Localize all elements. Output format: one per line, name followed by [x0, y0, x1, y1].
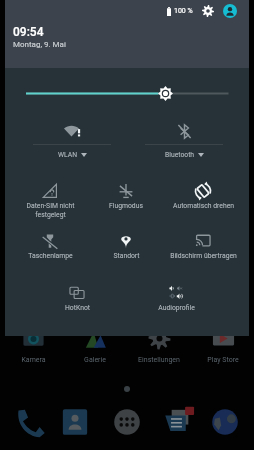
staticText: Automatisch drehen [173, 202, 234, 210]
staticText: Kamera [21, 356, 46, 364]
button[interactable]: Bildschirm übertragen [158, 233, 248, 269]
staticText: Montag, 9. Mai [13, 40, 66, 49]
staticText: Einstellungen [138, 356, 180, 364]
staticText: Galerie [84, 356, 106, 364]
button[interactable]: WLAN [22, 118, 122, 164]
button[interactable]: Einstellungen [129, 327, 189, 364]
staticText: HotKnot [65, 304, 90, 312]
staticText: Taschenlampe [28, 252, 73, 260]
button[interactable]: Kamera [3, 327, 63, 364]
staticText: Bildschirm übertragen [170, 252, 237, 260]
staticText: Daten-SIM nicht festgelegt [26, 202, 75, 219]
staticText: 09:54 [13, 25, 44, 39]
button[interactable]: Messages [164, 406, 196, 438]
button[interactable]: Apps [111, 406, 143, 438]
staticText: Audioprofile [158, 304, 195, 312]
button[interactable]: Standort [81, 233, 171, 269]
button[interactable]: Audioprofile [131, 285, 221, 321]
button[interactable]: Phone [14, 406, 46, 438]
button[interactable]: User profile [223, 4, 237, 18]
button[interactable]: Daten-SIM nicht festgelegt [5, 183, 95, 219]
button[interactable]: Browser [209, 406, 241, 438]
button[interactable]: Bluetooth [134, 118, 234, 164]
button[interactable]: Play Store [193, 327, 253, 364]
staticText: 100 % [174, 7, 193, 15]
staticText: WLAN [58, 151, 78, 159]
button[interactable]: Settings [202, 5, 214, 17]
staticText: Standort [113, 252, 140, 260]
button[interactable]: HotKnot [32, 285, 122, 321]
staticText: Flugmodus [109, 202, 143, 210]
button[interactable]: Contacts [59, 406, 91, 438]
button[interactable]: Galerie [65, 327, 125, 364]
button[interactable]: Taschenlampe [5, 233, 95, 269]
button[interactable]: Flugmodus [81, 183, 171, 219]
button[interactable]: Automatisch drehen [158, 183, 248, 219]
staticText: Play Store [207, 356, 239, 364]
staticText: Bluetooth [165, 151, 195, 159]
